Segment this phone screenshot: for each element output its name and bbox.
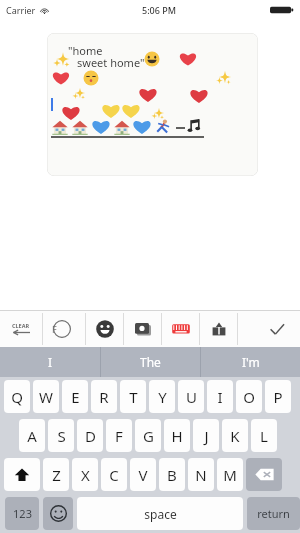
button[interactable]: B — [159, 458, 185, 491]
button[interactable]: Photos — [124, 311, 161, 347]
staticText: I — [217, 387, 223, 407]
button[interactable]: X — [72, 458, 98, 491]
staticText: W — [39, 387, 53, 407]
staticText: return — [257, 506, 290, 521]
staticText: F — [115, 426, 123, 446]
staticText: I — [48, 354, 53, 370]
staticText: B — [167, 465, 177, 485]
button[interactable]: Emoji keyboard — [43, 497, 73, 530]
staticText: sweet home" — [77, 55, 145, 70]
button[interactable]: Y — [149, 380, 175, 413]
button[interactable]: Shift — [4, 458, 40, 491]
button[interactable]: space — [77, 497, 243, 530]
staticText: M — [223, 465, 237, 485]
staticText: R — [99, 387, 109, 407]
button[interactable]: O — [236, 380, 262, 413]
button[interactable]: T — [120, 380, 146, 413]
staticText: K — [230, 426, 240, 446]
button[interactable]: D — [77, 419, 103, 452]
button[interactable]: U — [178, 380, 204, 413]
button[interactable]: Share — [200, 311, 237, 347]
staticText: O — [243, 387, 255, 407]
staticText: G — [143, 426, 154, 446]
button[interactable]: K — [222, 419, 248, 452]
button[interactable]: L — [251, 419, 277, 452]
button[interactable]: Keyboard — [162, 311, 199, 347]
staticText: U — [186, 387, 197, 407]
staticText: 5:06 PM — [142, 4, 176, 16]
button[interactable]: W — [33, 380, 59, 413]
staticText: P — [273, 387, 283, 407]
staticText: E — [71, 387, 80, 407]
staticText: CLEAR — [12, 322, 30, 329]
button[interactable]: A — [19, 419, 45, 452]
button[interactable]: I — [207, 380, 233, 413]
button[interactable]: Clear — [0, 311, 42, 347]
button[interactable]: The — [101, 347, 200, 377]
button[interactable]: I — [0, 347, 100, 377]
button[interactable]: J — [193, 419, 219, 452]
button[interactable]: R — [91, 380, 117, 413]
button[interactable]: return — [247, 497, 300, 530]
staticText: D — [85, 426, 96, 446]
staticText: C — [109, 465, 119, 485]
staticText: J — [204, 426, 209, 446]
button[interactable]: "home — [47, 33, 258, 176]
button[interactable]: M — [217, 458, 243, 491]
button[interactable]: Backspace — [246, 458, 282, 491]
button[interactable]: Done — [254, 311, 300, 347]
staticText: N — [195, 465, 207, 485]
button[interactable]: Emoji — [86, 311, 123, 347]
button[interactable]: Q — [4, 380, 30, 413]
staticText: F — [52, 323, 57, 335]
button[interactable]: V — [130, 458, 156, 491]
staticText: space — [144, 506, 177, 522]
staticText: S — [57, 426, 66, 446]
button[interactable]: Font — [43, 311, 80, 347]
staticText: Q — [11, 387, 23, 407]
staticText: T — [129, 387, 138, 407]
button[interactable]: E — [62, 380, 88, 413]
staticText: V — [138, 465, 148, 485]
button[interactable]: F — [106, 419, 132, 452]
staticText: I'm — [242, 354, 260, 370]
button[interactable]: Z — [43, 458, 69, 491]
staticText: X — [81, 465, 90, 485]
staticText: L — [260, 426, 268, 446]
button[interactable]: N — [188, 458, 214, 491]
staticText: The — [140, 354, 161, 370]
button[interactable]: S — [48, 419, 74, 452]
button[interactable]: P — [265, 380, 291, 413]
staticText: H — [171, 426, 183, 446]
staticText: Y — [158, 387, 167, 407]
button[interactable]: H — [164, 419, 190, 452]
button[interactable]: I'm — [201, 347, 300, 377]
staticText: 123 — [13, 506, 32, 521]
button[interactable]: C — [101, 458, 127, 491]
staticText: "home — [68, 43, 103, 58]
button[interactable]: 123 — [5, 497, 39, 530]
staticText: Z — [52, 465, 61, 485]
button[interactable]: G — [135, 419, 161, 452]
staticText: A — [27, 426, 37, 446]
staticText: Carrier — [6, 4, 36, 16]
